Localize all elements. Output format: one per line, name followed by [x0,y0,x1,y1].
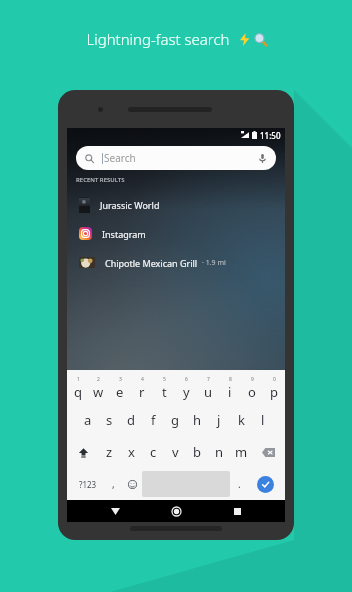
button[interactable]: m [230,436,252,468]
button[interactable]: Instagram [67,219,285,248]
button[interactable]: 0 [263,373,285,404]
staticText: c [150,443,157,461]
button[interactable]: h [186,404,208,436]
button[interactable]: Back [102,500,128,522]
staticText: w [93,383,104,401]
staticText: n [215,443,224,461]
staticText: k [238,411,245,429]
button[interactable]: Chipotle Mexican Grill [67,248,285,277]
staticText: 8 [229,376,232,383]
button[interactable]: . [230,471,249,497]
staticText: 2 [97,376,100,383]
button[interactable]: k [230,404,252,436]
button[interactable]: 7 [197,373,219,404]
button[interactable]: Jurassic World [67,190,285,219]
button[interactable]: Shift [67,436,99,468]
button[interactable]: 5 [153,373,175,404]
button[interactable]: x [120,436,142,468]
button[interactable]: Recents [224,500,250,522]
button[interactable]: 9 [241,373,263,404]
staticText: u [204,383,213,401]
staticText: s [106,411,113,429]
button[interactable]: b [186,436,208,468]
button[interactable]: g [164,404,186,436]
button[interactable]: 2 [88,373,109,404]
staticText: a [84,411,92,429]
staticText: 3 [119,376,122,383]
staticText: q [74,383,82,401]
staticText: o [248,383,256,401]
staticText: 0 [273,376,276,383]
button[interactable]: z [99,436,120,468]
button[interactable]: Emoji [123,471,142,497]
staticText: ?123 [79,479,97,490]
staticText: r [139,383,145,401]
button[interactable]: j [208,404,230,436]
button[interactable]: 3 [109,373,131,404]
button[interactable]: l [252,404,274,436]
staticText: Chipotle Mexican Grill [105,257,198,269]
staticText: l [261,411,265,429]
staticText: z [106,443,113,461]
staticText: m [235,443,248,461]
staticText: v [172,443,179,461]
button[interactable]: a [77,404,98,436]
button[interactable]: ?123 [71,471,104,497]
staticText: x [128,443,135,461]
button[interactable]: v [164,436,186,468]
button[interactable]: , [104,471,123,497]
staticText: Jurassic World [100,199,160,211]
staticText: 1 [77,376,80,383]
staticText: d [127,411,135,429]
button[interactable]: c [142,436,164,468]
staticText: i [228,383,232,401]
staticText: · 1.9 mi [202,258,226,268]
staticText: 5 [163,376,166,383]
button[interactable]: Backspace [252,436,285,468]
staticText: 7 [207,376,210,383]
staticText: g [171,411,179,429]
button[interactable]: Home [163,500,189,522]
button[interactable]: n [208,436,230,468]
button[interactable]: 6 [175,373,197,404]
button[interactable]: d [120,404,142,436]
staticText: y [183,383,190,401]
staticText: 11:50 [260,130,281,141]
staticText: . [238,477,241,491]
staticText: 6 [185,376,188,383]
button[interactable]: Voice search [258,154,267,163]
button[interactable]: 4 [131,373,153,404]
button[interactable]: f [142,404,164,436]
button[interactable]: s [98,404,120,436]
staticText: p [270,383,278,401]
button[interactable]: 1 [67,373,88,404]
staticText: RECENT RESULTS [76,176,125,184]
staticText: j [217,411,221,429]
staticText: b [193,443,201,461]
button[interactable]: Search [257,476,274,493]
staticText: t [162,383,167,401]
staticText: 4 [141,376,144,383]
staticText: h [193,411,202,429]
button[interactable]: Search [76,146,276,170]
staticText: 9 [251,376,254,383]
staticText: e [116,383,124,401]
staticText: f [151,411,156,429]
staticText: Lightning-fast search [86,29,230,49]
staticText: Search [104,151,136,165]
button[interactable]: 8 [219,373,241,404]
staticText: Instagram [102,228,146,240]
staticText: , [112,477,115,491]
